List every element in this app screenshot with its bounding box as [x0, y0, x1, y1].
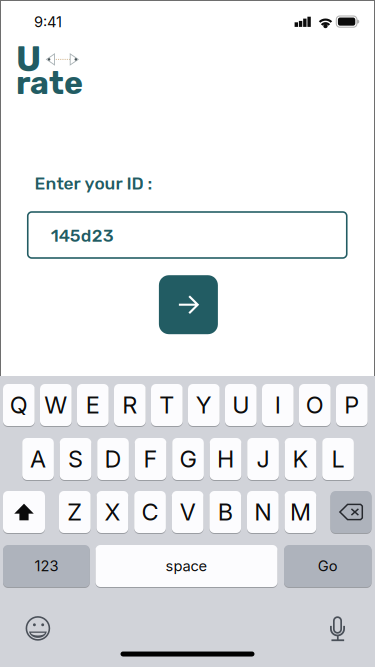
button[interactable]: H: [210, 437, 241, 480]
button[interactable]: I: [262, 383, 294, 426]
button[interactable]: U: [225, 383, 257, 426]
staticText: M: [290, 498, 311, 526]
button[interactable]: T: [151, 383, 183, 426]
staticText: D: [104, 445, 121, 473]
staticText: K: [293, 445, 309, 473]
button[interactable]: B: [209, 490, 241, 533]
button[interactable]: Y: [188, 383, 220, 426]
button[interactable]: Z: [59, 490, 91, 533]
staticText: F: [144, 445, 158, 473]
staticText: L: [332, 445, 345, 473]
staticText: U: [232, 391, 249, 419]
staticText: H: [217, 445, 234, 473]
button[interactable]: L: [322, 437, 354, 480]
button[interactable]: C: [134, 490, 166, 533]
staticText: A: [30, 445, 46, 473]
staticText: N: [254, 498, 271, 526]
button[interactable]: S: [60, 437, 91, 480]
staticText: Q: [10, 391, 28, 419]
staticText: rate: [16, 64, 83, 102]
staticText: W: [44, 391, 67, 419]
button[interactable]: D: [97, 437, 129, 480]
staticText: 123: [34, 557, 58, 575]
button[interactable]: X: [97, 490, 128, 533]
staticText: P: [344, 391, 359, 419]
staticText: space: [165, 557, 207, 575]
staticText: 145d23: [51, 225, 114, 246]
button[interactable]: Go: [284, 544, 372, 587]
staticText: R: [122, 391, 137, 419]
button[interactable]: Dictation: [314, 609, 360, 649]
button[interactable]: A: [22, 437, 54, 480]
button[interactable]: 123: [3, 544, 90, 587]
button[interactable]: Q: [3, 383, 35, 426]
staticText: Y: [196, 391, 212, 419]
staticText: B: [218, 498, 233, 526]
button[interactable]: P: [336, 383, 368, 426]
staticText: Enter your ID :: [34, 173, 152, 194]
staticText: T: [159, 391, 174, 419]
button[interactable]: Continue: [159, 275, 218, 334]
staticText: E: [86, 391, 100, 419]
button[interactable]: Delete: [330, 490, 371, 533]
button[interactable]: V: [172, 490, 203, 533]
button[interactable]: R: [114, 383, 146, 426]
button[interactable]: space: [95, 544, 277, 587]
button[interactable]: Emoji keyboard: [15, 608, 61, 648]
staticText: I: [275, 391, 281, 419]
staticText: O: [306, 391, 324, 419]
staticText: X: [104, 498, 120, 526]
staticText: G: [180, 445, 197, 473]
button[interactable]: K: [285, 437, 316, 480]
button[interactable]: W: [40, 383, 72, 426]
staticText: J: [257, 445, 270, 473]
button[interactable]: J: [247, 437, 279, 480]
staticText: Go: [318, 557, 338, 575]
button[interactable]: N: [247, 490, 279, 533]
button[interactable]: M: [285, 490, 316, 533]
button[interactable]: E: [77, 383, 109, 426]
button[interactable]: O: [299, 383, 331, 426]
button[interactable]: Shift: [3, 490, 45, 533]
staticText: U: [16, 39, 41, 80]
button[interactable]: 145d23: [28, 212, 347, 258]
staticText: S: [68, 445, 83, 473]
staticText: Z: [67, 498, 82, 526]
button[interactable]: F: [135, 437, 166, 480]
staticText: C: [142, 498, 159, 526]
staticText: V: [180, 498, 196, 526]
button[interactable]: G: [172, 437, 204, 480]
staticText: 9:41: [34, 13, 62, 31]
